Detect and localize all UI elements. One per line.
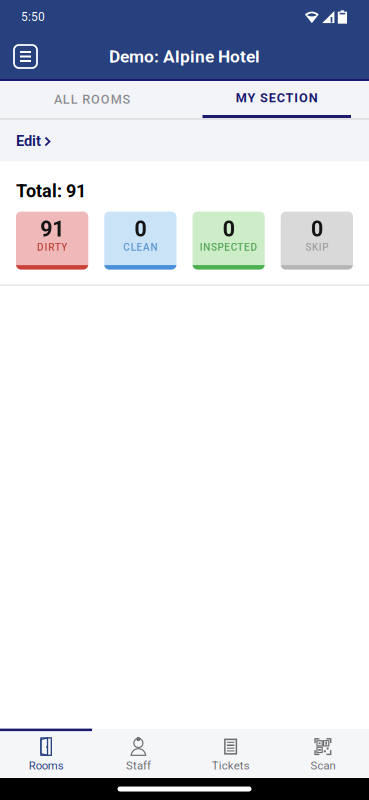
staticText: Edit <box>16 132 41 150</box>
staticText: DIRTY <box>37 242 67 253</box>
staticText: 5:50 <box>21 10 45 24</box>
staticText: CLEAN <box>123 242 158 253</box>
button[interactable]: Staff <box>92 729 184 778</box>
button[interactable]: Menu <box>0 36 46 77</box>
button[interactable]: ALL ROOMS <box>0 81 184 118</box>
staticText: 91 <box>40 217 64 242</box>
staticText: Tickets <box>212 759 250 772</box>
button[interactable]: 0 <box>192 212 265 270</box>
staticText: Rooms <box>29 759 64 772</box>
staticText: MY SECTION <box>236 91 318 105</box>
staticText: Total: 91 <box>16 180 86 202</box>
button[interactable]: Rooms <box>0 729 92 778</box>
button[interactable]: 0 <box>281 212 353 270</box>
button[interactable]: 91 <box>16 212 88 270</box>
button[interactable]: Tickets <box>184 729 277 778</box>
button[interactable]: Edit <box>0 120 369 161</box>
staticText: Demo: Alpine Hotel <box>109 46 260 67</box>
staticText: 0 <box>134 217 146 242</box>
staticText: 0 <box>311 217 323 242</box>
staticText: Staff <box>126 759 151 772</box>
button[interactable]: 0 <box>104 212 176 270</box>
staticText: Scan <box>310 759 335 772</box>
button[interactable]: MY SECTION <box>184 81 369 118</box>
staticText: SKIP <box>305 242 328 253</box>
button[interactable]: Scan <box>277 729 369 778</box>
staticText: ALL ROOMS <box>54 92 130 107</box>
staticText: INSPECTED <box>200 242 257 253</box>
staticText: 0 <box>223 217 235 242</box>
